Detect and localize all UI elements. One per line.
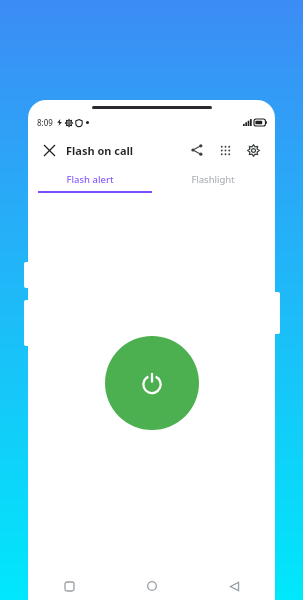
button[interactable]: Recents xyxy=(28,572,111,600)
button[interactable]: Close xyxy=(38,139,60,161)
button[interactable]: Home xyxy=(111,572,193,600)
staticText: Flash on call xyxy=(66,143,134,158)
button[interactable]: Flash alert xyxy=(28,167,151,191)
staticText: Flash alert xyxy=(66,173,114,186)
button[interactable]: Settings xyxy=(241,138,265,162)
button[interactable]: Flashlight xyxy=(151,167,275,191)
staticText: 8:09 xyxy=(37,117,53,128)
button[interactable]: Back xyxy=(193,572,275,600)
button[interactable]: Toggle flash alert xyxy=(105,336,199,430)
staticText: Flashlight xyxy=(191,173,235,186)
button[interactable]: More apps xyxy=(213,138,237,162)
button[interactable]: Share xyxy=(185,138,209,162)
